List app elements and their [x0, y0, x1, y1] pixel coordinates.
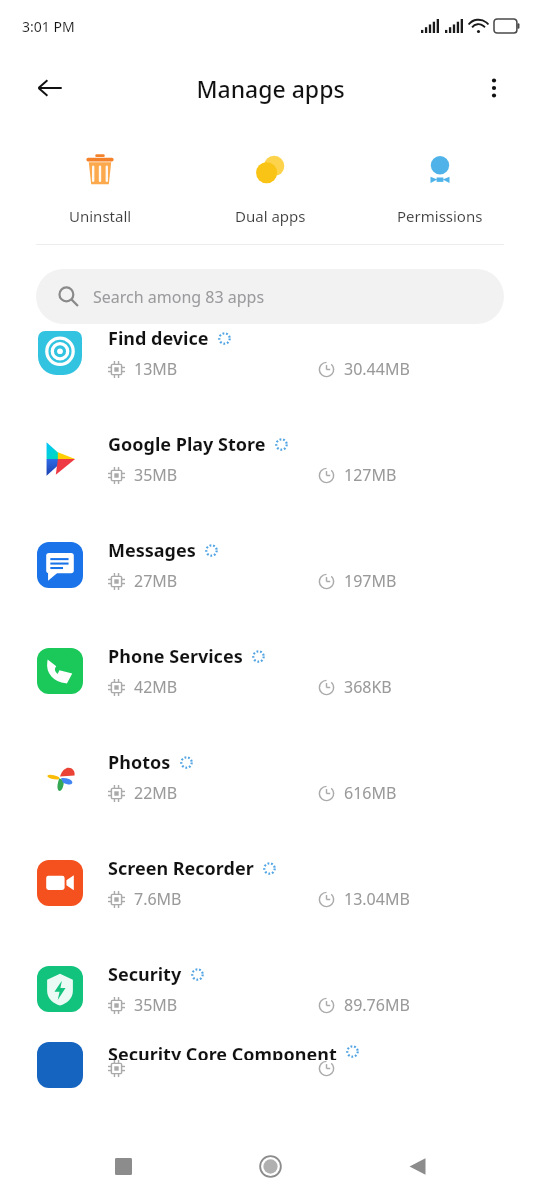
staticText: 368KB — [344, 676, 392, 698]
staticText: 616MB — [344, 782, 397, 804]
staticText: Permissions — [397, 206, 483, 226]
staticText: Screen Recorder — [108, 856, 254, 881]
staticText: Uninstall — [69, 206, 132, 226]
staticText: 13MB — [134, 358, 178, 380]
staticText: 13.04MB — [344, 888, 410, 910]
button[interactable]: Messages — [0, 512, 540, 618]
staticText: 127MB — [344, 464, 397, 486]
button[interactable]: Uninstall — [30, 142, 170, 232]
staticText: 197MB — [344, 570, 397, 592]
staticText: 22MB — [134, 782, 178, 804]
button[interactable]: Back — [393, 1142, 441, 1190]
button[interactable]: Photos — [0, 724, 540, 830]
staticText: 27MB — [134, 570, 178, 592]
button[interactable]: Security Core Component — [0, 1042, 540, 1060]
button[interactable]: More options — [472, 66, 516, 110]
staticText: Security — [108, 962, 182, 987]
staticText: Google Play Store — [108, 432, 266, 457]
button[interactable]: Permissions — [370, 142, 510, 232]
staticText: Dual apps — [235, 206, 306, 226]
staticText: 3:01 PM — [22, 17, 75, 36]
staticText: 89.76MB — [344, 994, 410, 1016]
button[interactable]: Recents — [99, 1142, 147, 1190]
button[interactable]: Back — [28, 66, 72, 110]
staticText: 42MB — [134, 676, 178, 698]
staticText: Phone Services — [108, 644, 243, 669]
staticText: Messages — [108, 538, 196, 563]
staticText: 30.44MB — [344, 358, 410, 380]
button[interactable]: Screen Recorder — [0, 830, 540, 936]
button[interactable]: Phone Services — [0, 618, 540, 724]
button[interactable]: Home — [246, 1142, 294, 1190]
staticText: Search among 83 apps — [93, 286, 265, 308]
staticText: Manage apps — [196, 73, 345, 104]
button[interactable]: Security — [0, 936, 540, 1042]
button[interactable]: Find device — [0, 300, 540, 406]
button[interactable]: Google Play Store — [0, 406, 540, 512]
button[interactable]: Dual apps — [200, 142, 340, 232]
button[interactable]: Search among 83 apps — [36, 269, 504, 324]
staticText: 7.6MB — [134, 888, 182, 910]
staticText: Photos — [108, 750, 171, 775]
staticText: Find device — [108, 326, 209, 351]
staticText: 35MB — [134, 464, 178, 486]
staticText: Security Core Component — [108, 1042, 337, 1060]
staticText: 35MB — [134, 994, 178, 1016]
